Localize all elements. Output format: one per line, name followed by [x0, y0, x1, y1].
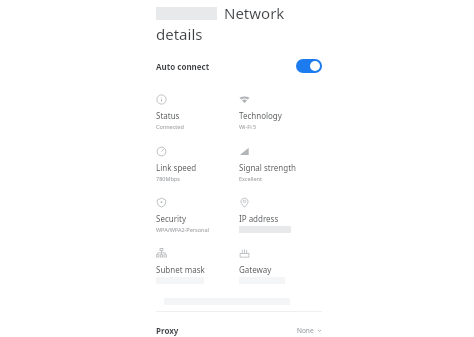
staticText: Proxy [156, 325, 179, 336]
staticText: Gateway [239, 264, 272, 275]
staticText: 780Mbps [156, 175, 180, 182]
button[interactable]: Proxy [156, 324, 322, 337]
staticText: Technology [239, 110, 282, 121]
button[interactable]: Auto connect toggle [296, 59, 322, 73]
staticText: Link speed [156, 162, 197, 173]
staticText: Connected [156, 123, 184, 130]
button[interactable]: Technology [239, 94, 322, 130]
staticText: details [156, 24, 203, 44]
staticText: Wi-Fi 5 [239, 123, 257, 130]
button[interactable]: Security [156, 197, 239, 233]
button[interactable]: Status [156, 94, 239, 130]
button[interactable]: IP address [239, 197, 322, 233]
button[interactable]: Auto connect [156, 55, 322, 77]
staticText: Security [156, 213, 187, 224]
staticText: Network [224, 3, 285, 23]
button[interactable]: Gateway [239, 248, 322, 284]
button[interactable]: Subnet mask [156, 248, 239, 284]
staticText: WPA/WPA2-Personal [156, 226, 209, 233]
staticText: Auto connect [156, 61, 210, 72]
button[interactable]: Link speed [156, 146, 239, 182]
button[interactable]: Signal strength [239, 146, 322, 182]
staticText: None [297, 326, 314, 335]
staticText: Excellent [239, 175, 262, 182]
staticText: Status [156, 110, 180, 121]
staticText: IP address [239, 213, 279, 224]
staticText: Subnet mask [156, 264, 205, 275]
staticText: Signal strength [239, 162, 297, 173]
